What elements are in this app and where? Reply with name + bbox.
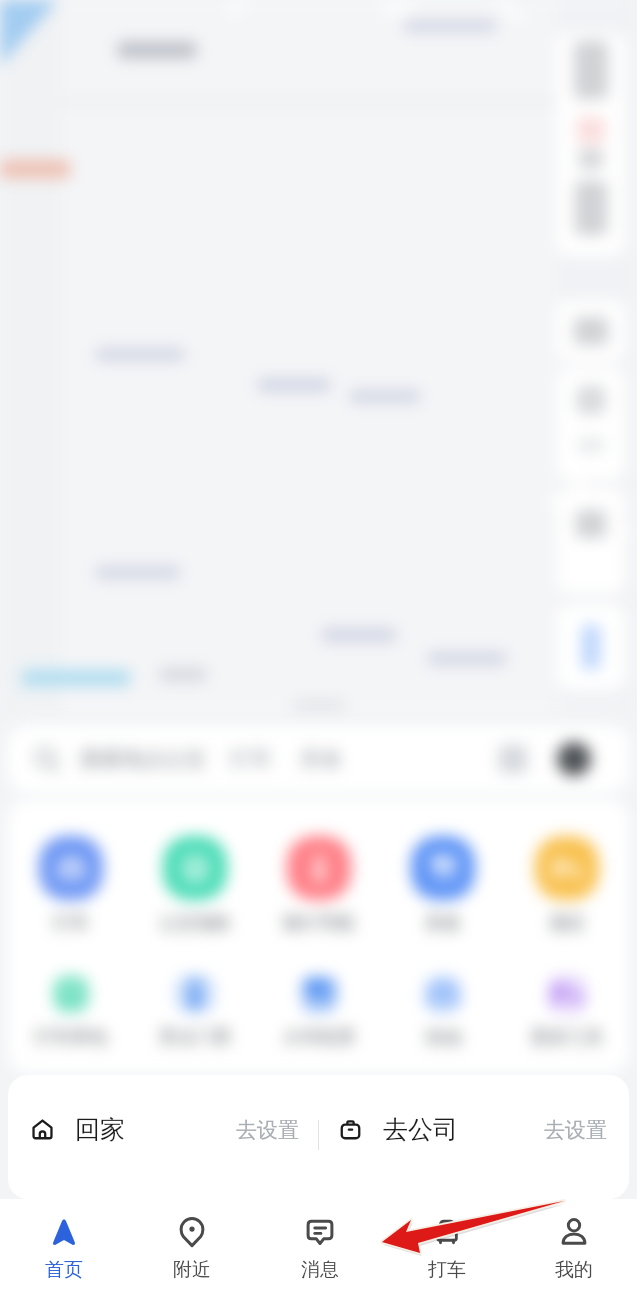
- button[interactable]: 去公司: [319, 1075, 629, 1145]
- button[interactable]: 景点门票: [133, 975, 257, 1049]
- button[interactable]: Search: [8, 726, 629, 792]
- button[interactable]: 火车机票: [257, 975, 381, 1049]
- button[interactable]: 首页: [0, 1215, 128, 1310]
- staticText: 骑行导航: [283, 912, 355, 935]
- button[interactable]: 消息: [256, 1215, 383, 1310]
- staticText: 美食: [425, 912, 461, 935]
- button[interactable]: Map control: [557, 604, 625, 690]
- button[interactable]: 骑行导航: [257, 836, 381, 935]
- button[interactable]: 我的: [510, 1215, 637, 1310]
- staticText: 加油: [425, 1026, 461, 1049]
- button[interactable]: Map control: [557, 488, 625, 594]
- button[interactable]: 加油: [381, 975, 505, 1049]
- staticText: 火车机票: [283, 1026, 355, 1049]
- staticText: 打车: [230, 746, 272, 772]
- button[interactable]: 公交地铁: [133, 836, 257, 935]
- staticText: 附近: [173, 1258, 211, 1282]
- staticText: 景点门票: [159, 1026, 231, 1049]
- button[interactable]: 酒店: [505, 836, 629, 935]
- button[interactable]: 更多工具: [505, 975, 629, 1049]
- button[interactable]: Map control: [557, 368, 625, 480]
- staticText: 搜索地点公交: [80, 746, 206, 772]
- button[interactable]: 回家: [8, 1075, 318, 1145]
- staticText: 回家: [75, 1114, 125, 1145]
- staticText: 去公司: [383, 1114, 458, 1145]
- staticText: 我的: [555, 1258, 593, 1282]
- button[interactable]: 打车: [383, 1215, 510, 1310]
- staticText: 更多工具: [531, 1026, 603, 1049]
- button[interactable]: Map control: [557, 300, 625, 362]
- button[interactable]: 打车: [8, 836, 133, 935]
- staticText: 打车: [53, 912, 89, 935]
- staticText: 去设置: [236, 1117, 299, 1143]
- staticText: 打车: [428, 1258, 466, 1282]
- staticText: 消息: [301, 1258, 339, 1282]
- button[interactable]: 附近: [128, 1215, 256, 1310]
- button[interactable]: Map control: [557, 33, 625, 256]
- staticText: 美食: [300, 746, 342, 772]
- button[interactable]: 打车券包: [8, 975, 133, 1049]
- staticText: 首页: [45, 1258, 83, 1282]
- staticText: 酒店: [549, 912, 585, 935]
- staticText: 打车券包: [35, 1026, 107, 1049]
- staticText: 去设置: [544, 1117, 607, 1143]
- staticText: 公交地铁: [159, 912, 231, 935]
- button[interactable]: 美食: [381, 836, 505, 935]
